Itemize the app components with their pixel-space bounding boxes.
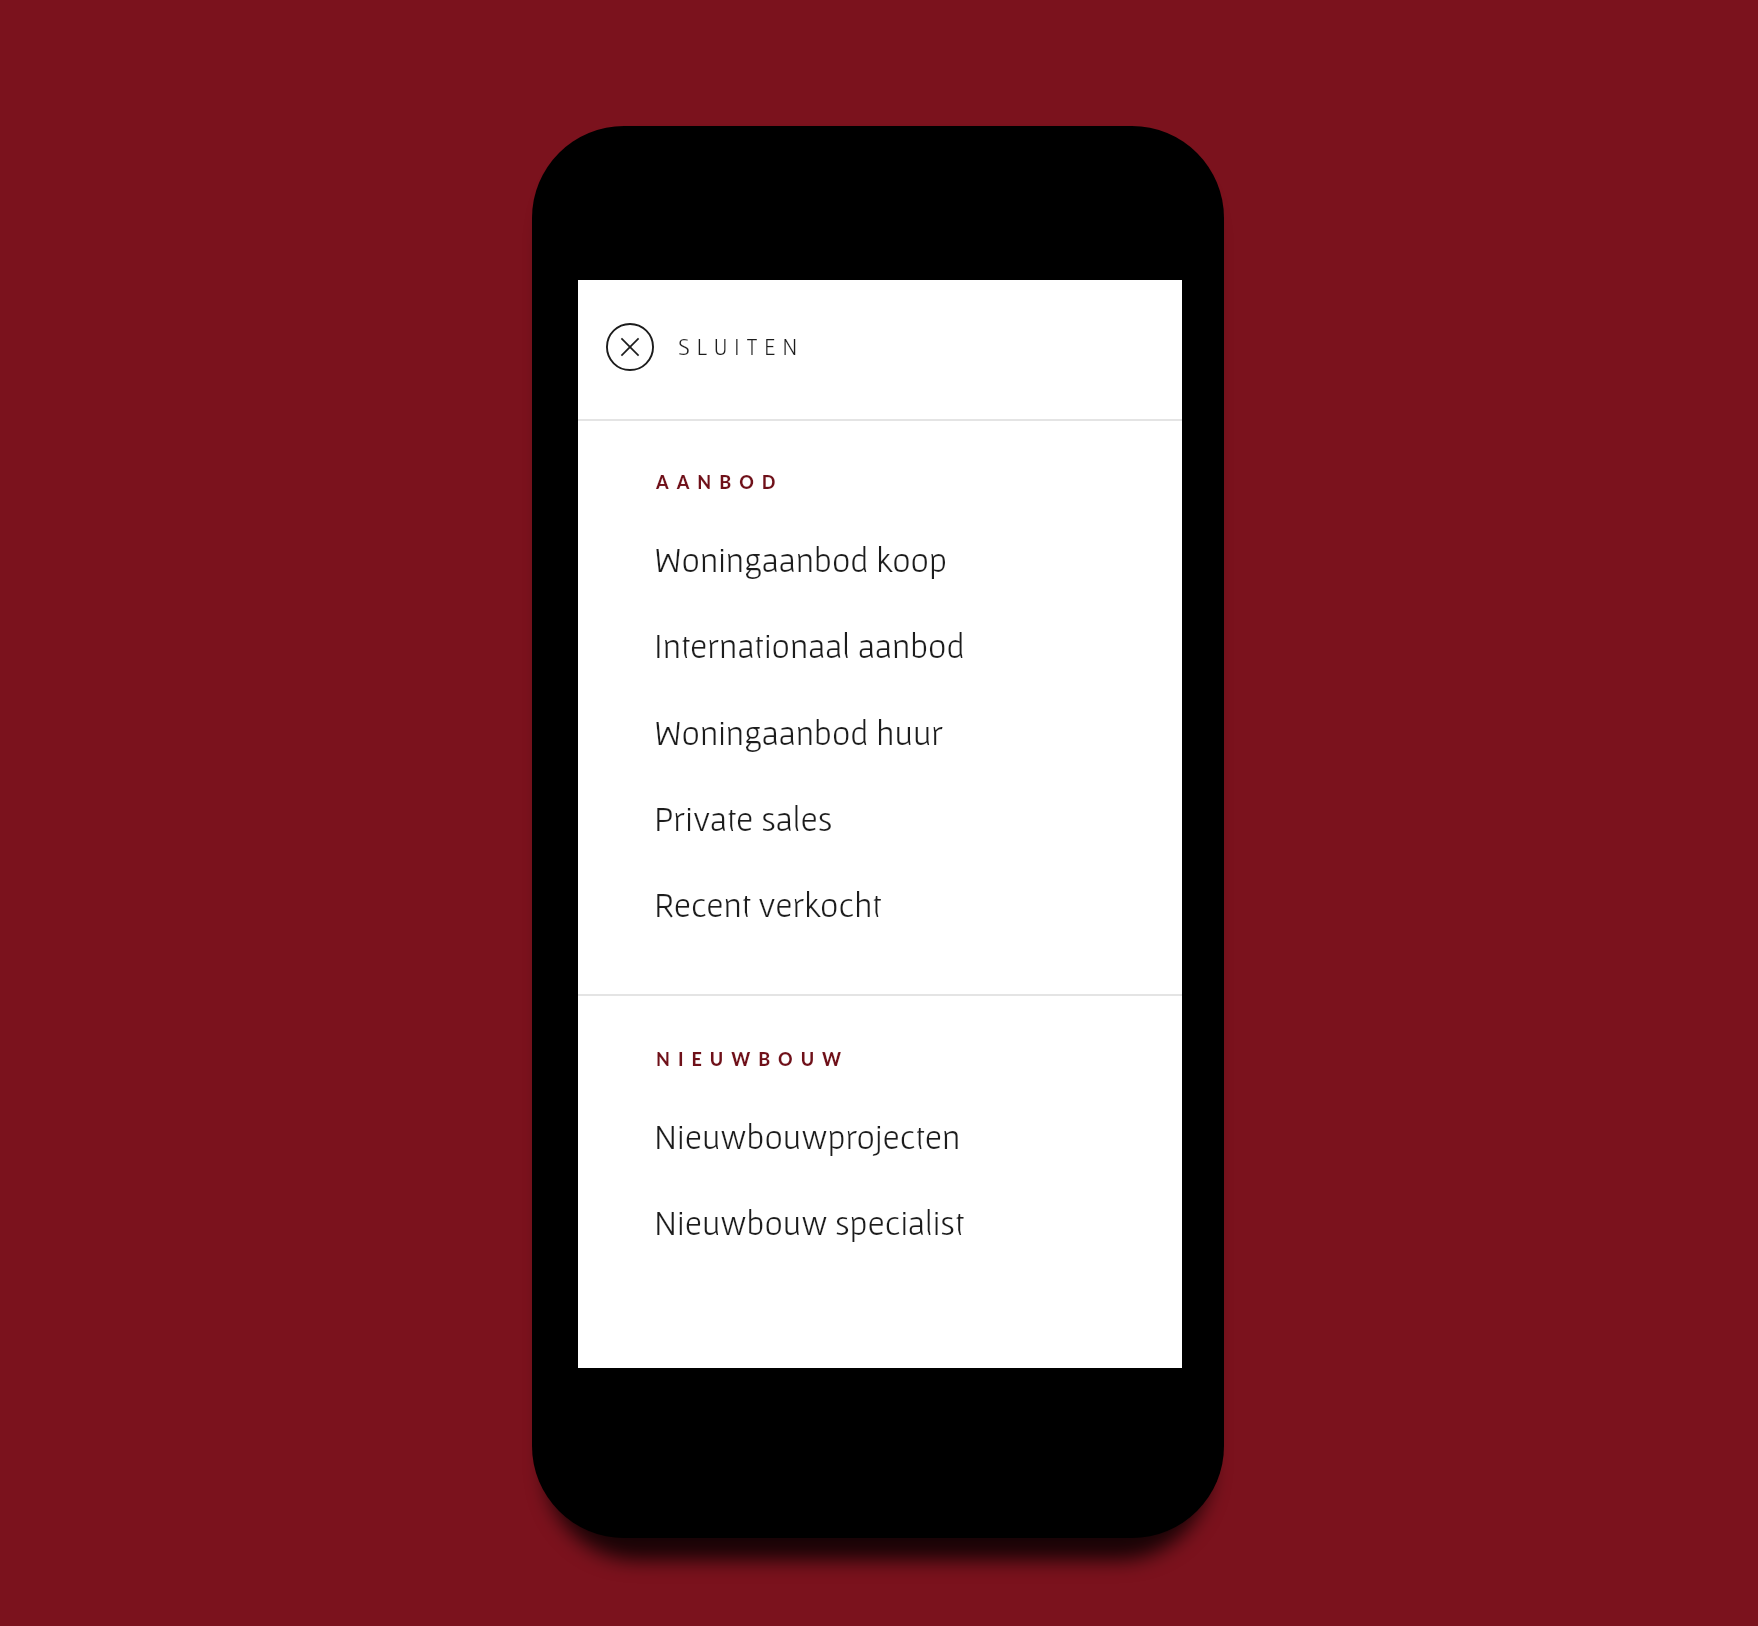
button[interactable]: Woningaanbod huur	[578, 684, 1182, 770]
button[interactable]: Sluiten	[600, 315, 810, 379]
staticText: NIEUWBOUW	[656, 1048, 850, 1070]
button[interactable]: Internationaal aanbod	[578, 597, 1182, 683]
staticText: SLUITEN	[678, 334, 804, 360]
staticText: Internationaal aanbod	[654, 626, 965, 665]
staticText: AANBOD	[656, 471, 784, 493]
button[interactable]: Woningaanbod koop	[578, 511, 1182, 597]
staticText: Nieuwbouw specialist	[654, 1203, 965, 1242]
staticText: Recent verkocht	[654, 885, 882, 924]
button[interactable]: Nieuwbouw specialist	[578, 1174, 1182, 1260]
staticText: Woningaanbod koop	[654, 540, 947, 579]
button[interactable]: Private sales	[578, 770, 1182, 856]
staticText: Private sales	[654, 799, 833, 838]
button[interactable]: Recent verkocht	[578, 856, 1182, 942]
staticText: Nieuwbouwprojecten	[654, 1117, 961, 1156]
button[interactable]: Nieuwbouwprojecten	[578, 1088, 1182, 1174]
staticText: Woningaanbod huur	[654, 713, 944, 752]
